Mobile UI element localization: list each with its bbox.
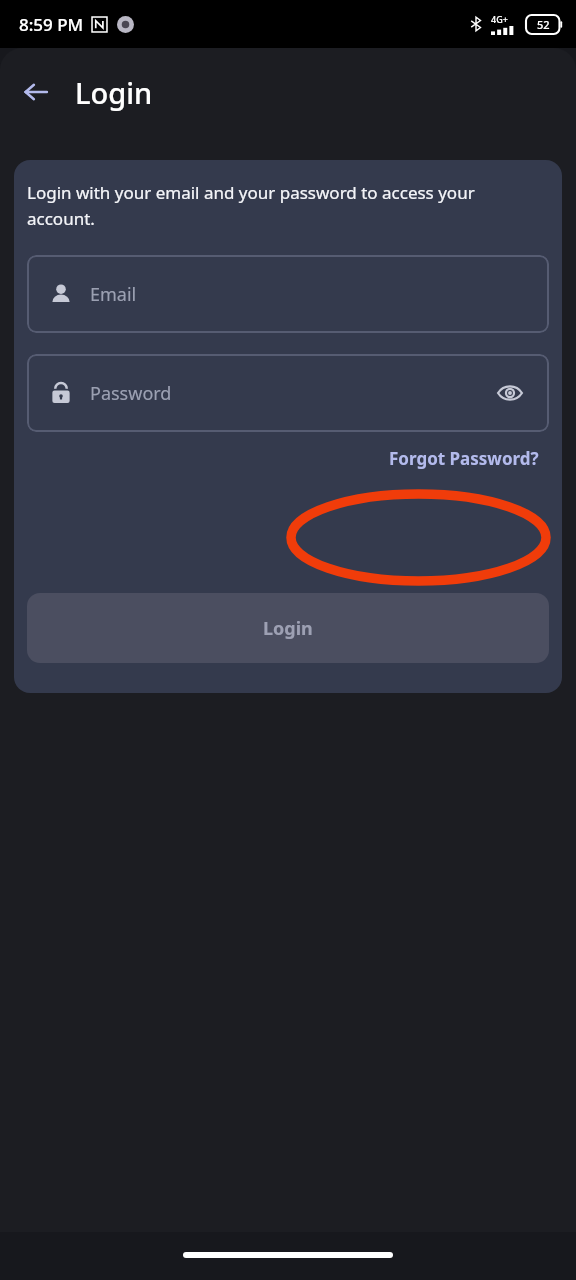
staticText: Forgot Password? <box>389 447 539 470</box>
staticText: Login with your email and your password … <box>27 181 540 230</box>
staticText: 8:59 PM <box>19 13 84 36</box>
button[interactable]: Show password <box>491 374 529 412</box>
button[interactable]: Password <box>27 354 549 432</box>
staticText: 4G+ <box>491 13 508 25</box>
button[interactable]: Login <box>27 593 549 663</box>
button[interactable]: Email <box>27 255 549 333</box>
staticText: Login <box>75 73 153 112</box>
staticText: Password <box>90 381 172 406</box>
staticText: Email <box>90 282 137 307</box>
button[interactable]: Forgot Password? <box>381 439 547 478</box>
staticText: Login <box>263 616 313 641</box>
button[interactable]: Back <box>12 68 60 116</box>
staticText: 52 <box>537 17 550 32</box>
